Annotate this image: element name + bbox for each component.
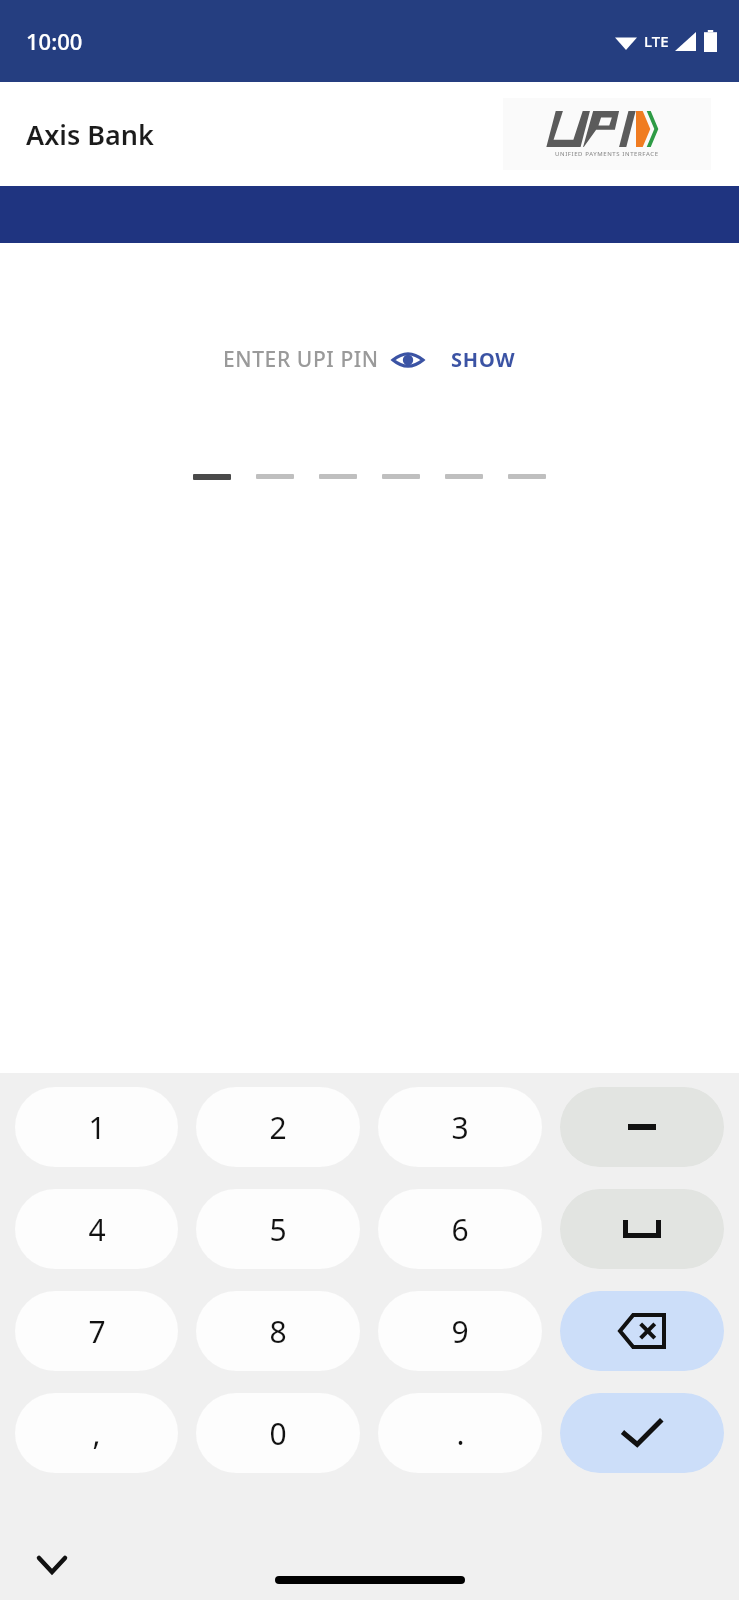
staticText: 3 [451, 1107, 469, 1148]
staticText: SHOW [451, 346, 516, 373]
button[interactable]: 0 [196, 1393, 360, 1473]
button[interactable]: , [15, 1393, 178, 1473]
button[interactable]: Backspace [560, 1291, 724, 1371]
button[interactable]: Hide keyboard [26, 1539, 78, 1591]
staticText: 8 [269, 1311, 287, 1352]
button[interactable]: 1 [15, 1087, 178, 1167]
button[interactable]: Space [560, 1189, 724, 1269]
staticText: 2 [269, 1107, 287, 1148]
staticText: 5 [269, 1209, 287, 1250]
staticText: UNIFIED PAYMENTS INTERFACE [555, 150, 659, 158]
staticText: 7 [88, 1311, 106, 1352]
staticText: Axis Bank [26, 116, 154, 153]
button[interactable]: 6 [378, 1189, 542, 1269]
button[interactable]: Minus [560, 1087, 724, 1167]
staticText: LTE [644, 31, 669, 51]
staticText: 9 [451, 1311, 469, 1352]
button[interactable]: 5 [196, 1189, 360, 1269]
button[interactable]: 4 [15, 1189, 178, 1269]
button[interactable]: 7 [15, 1291, 178, 1371]
button[interactable]: 2 [196, 1087, 360, 1167]
button[interactable]: SHOW [451, 346, 516, 373]
staticText: 0 [269, 1413, 287, 1454]
staticText: ENTER UPI PIN [223, 345, 379, 374]
staticText: 4 [88, 1209, 106, 1250]
button[interactable]: Confirm [560, 1393, 724, 1473]
staticText: . [456, 1413, 465, 1454]
button[interactable]: 3 [378, 1087, 542, 1167]
button[interactable]: 9 [378, 1291, 542, 1371]
button[interactable]: Show UPI PIN [391, 347, 425, 373]
staticText: , [92, 1413, 101, 1454]
button[interactable]: . [378, 1393, 542, 1473]
staticText: 10:00 [26, 26, 83, 56]
staticText: 6 [451, 1209, 469, 1250]
staticText: 1 [88, 1107, 106, 1148]
button[interactable]: 8 [196, 1291, 360, 1371]
